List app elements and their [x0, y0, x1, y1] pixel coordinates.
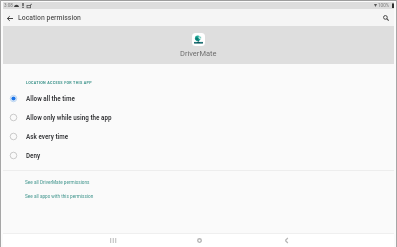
- staticText: DriverMate: [180, 49, 217, 58]
- button[interactable]: Home: [193, 234, 205, 246]
- staticText: Allow only while using the app: [26, 114, 112, 121]
- button[interactable]: See all DriverMate permissions: [3, 178, 394, 187]
- button[interactable]: See all apps with this permission: [3, 192, 394, 201]
- staticText: Ask every time: [26, 133, 69, 140]
- button[interactable]: Search: [380, 12, 392, 24]
- button[interactable]: Recents: [107, 234, 119, 246]
- staticText: LOCATION ACCESS FOR THIS APP: [26, 81, 92, 85]
- button[interactable]: Back: [280, 234, 292, 246]
- staticText: See all apps with this permission: [25, 194, 94, 200]
- button[interactable]: Deny: [3, 146, 394, 165]
- staticText: 100%: [378, 3, 390, 8]
- staticText: Location permission: [18, 14, 81, 22]
- staticText: Allow all the time: [26, 95, 75, 102]
- staticText: Deny: [26, 152, 41, 159]
- button[interactable]: Allow only while using the app: [3, 108, 394, 127]
- button[interactable]: Allow all the time: [3, 89, 394, 108]
- staticText: See all DriverMate permissions: [25, 180, 90, 186]
- staticText: 3:08: [4, 3, 13, 8]
- button[interactable]: Ask every time: [3, 127, 394, 146]
- button[interactable]: Back: [4, 12, 16, 24]
